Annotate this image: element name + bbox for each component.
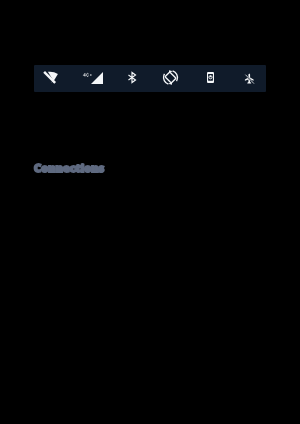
button[interactable]: Airplane mode off — [230, 65, 270, 92]
button[interactable]: Auto rotate screen — [151, 65, 191, 92]
button[interactable]: Bluetooth — [111, 65, 151, 92]
staticText: Connections — [34, 160, 105, 175]
staticText: Connections — [34, 160, 105, 175]
button[interactable]: Device controls — [190, 65, 230, 92]
button[interactable]: Mobile data 4G plus — [72, 65, 112, 92]
button[interactable]: Wi-Fi off — [32, 65, 72, 92]
